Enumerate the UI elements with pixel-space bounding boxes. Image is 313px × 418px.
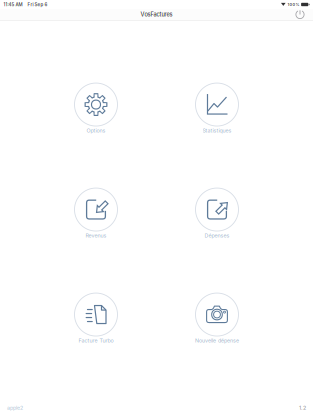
staticText: Revenus	[85, 232, 106, 239]
button[interactable]: Revenus	[36, 186, 156, 242]
button[interactable]: Options	[36, 81, 156, 137]
button[interactable]: Dépenses	[157, 186, 277, 242]
staticText: Facture Turbo	[78, 337, 113, 344]
staticText: Statistiques	[202, 127, 231, 134]
button[interactable]: Facture Turbo	[36, 291, 156, 347]
staticText: 100%	[288, 2, 300, 7]
staticText: Nouvelle dépense	[195, 337, 239, 344]
staticText: Dépenses	[204, 232, 229, 239]
staticText: Options	[86, 127, 105, 134]
staticText: apple2	[7, 404, 23, 411]
staticText: 11:45 AM	[3, 2, 22, 7]
staticText: Fri Sep 6	[27, 2, 47, 7]
button[interactable]: Log out	[293, 7, 307, 21]
button[interactable]: Statistiques	[157, 81, 277, 137]
staticText: VosFactures	[140, 11, 172, 18]
staticText: 1.2	[299, 404, 306, 411]
button[interactable]: Nouvelle dépense	[157, 291, 277, 347]
